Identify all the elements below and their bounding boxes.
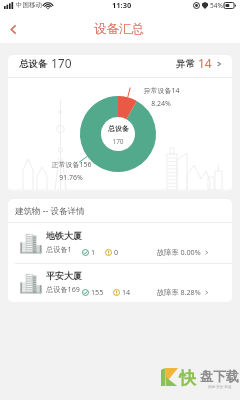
staticText: 155 xyxy=(91,287,104,297)
staticText: 54% xyxy=(210,1,223,10)
staticText: 异常设备14 xyxy=(143,86,180,96)
staticText: 总设备169 xyxy=(46,284,80,294)
button[interactable]: 平安大厦 xyxy=(8,264,232,301)
staticText: 正常设备156 xyxy=(51,160,92,170)
staticText: 总设备1 xyxy=(46,244,72,254)
staticText: 91.76% xyxy=(59,173,83,183)
staticText: 总设备 xyxy=(108,124,129,133)
staticText: 地铁大厦 xyxy=(46,230,82,241)
staticText: 快捷·安全·高速 xyxy=(208,384,232,389)
staticText: 1 xyxy=(91,247,96,257)
staticText: 建筑物 -- 设备详情 xyxy=(15,205,85,217)
staticText: 故障率 0.00% xyxy=(157,247,201,257)
staticText: 11:30 xyxy=(112,0,132,10)
staticText: 平安大厦 xyxy=(46,270,82,281)
button[interactable]: 异常 xyxy=(176,55,222,71)
staticText: 170 xyxy=(51,55,72,71)
staticText: 快 xyxy=(179,368,196,389)
staticText: 设备汇总 xyxy=(94,21,144,37)
staticText: 0 xyxy=(114,247,119,257)
staticText: 14 xyxy=(198,55,212,71)
staticText: 14 xyxy=(122,287,131,297)
button[interactable]: Back xyxy=(0,16,26,42)
staticText: 170 xyxy=(112,137,124,146)
button[interactable]: 地铁大厦 xyxy=(8,223,232,263)
staticText: 故障率 8.28% xyxy=(157,287,201,297)
staticText: 盘下载 xyxy=(200,368,239,384)
staticText: 总设备 xyxy=(19,58,48,70)
staticText: 中国移动 xyxy=(16,1,42,9)
staticText: 异常 xyxy=(176,58,195,70)
staticText: 8.24% xyxy=(151,99,171,109)
